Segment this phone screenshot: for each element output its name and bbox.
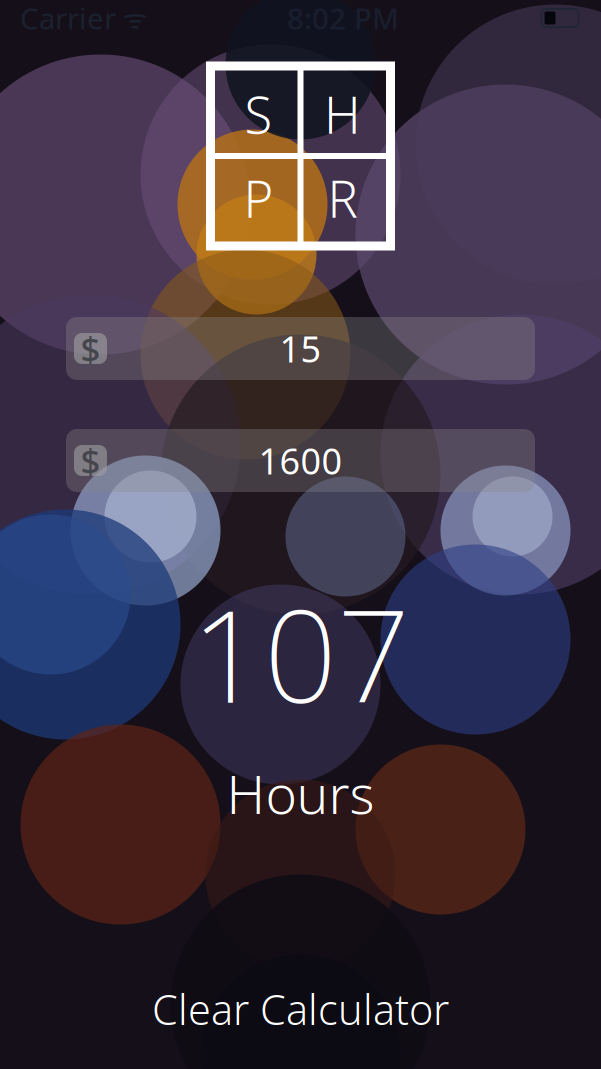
staticText: 107 xyxy=(191,568,410,738)
staticText: H xyxy=(324,80,361,148)
staticText: Clear Calculator xyxy=(152,982,449,1036)
button[interactable]: 1600 xyxy=(66,429,535,492)
staticText: 1600 xyxy=(258,437,342,484)
staticText: R xyxy=(327,164,357,232)
staticText: Hours xyxy=(226,758,374,829)
staticText: Carrier xyxy=(20,0,116,37)
staticText: $ xyxy=(80,437,100,483)
button[interactable]: 15 xyxy=(66,317,535,380)
staticText: $ xyxy=(80,325,100,371)
staticText: S xyxy=(244,80,272,148)
staticText: 15 xyxy=(279,325,321,372)
staticText: 8:02 PM xyxy=(287,0,399,37)
staticText: ᯤ xyxy=(116,0,147,36)
staticText: P xyxy=(243,164,273,232)
button[interactable]: Clear Calculator xyxy=(0,977,601,1041)
